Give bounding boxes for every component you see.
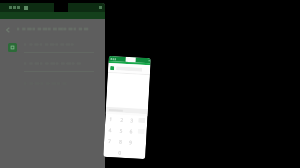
staticText: 4 bbox=[108, 127, 112, 134]
other: Contact bbox=[110, 66, 114, 70]
button[interactable]: 0 bbox=[114, 147, 125, 158]
button[interactable]: Backspace bbox=[138, 118, 145, 123]
staticText: 0 bbox=[118, 150, 122, 157]
button[interactable]: 6 bbox=[125, 126, 136, 137]
staticText: 9 bbox=[129, 139, 132, 146]
staticText: 6 bbox=[129, 128, 133, 135]
staticText: 2 bbox=[120, 117, 123, 124]
staticText: 8 bbox=[119, 139, 122, 146]
button[interactable]: App icon bbox=[8, 43, 17, 52]
button[interactable]: Back bbox=[3, 25, 12, 34]
button[interactable]: 4 bbox=[104, 125, 116, 136]
button[interactable] bbox=[103, 147, 115, 157]
staticText: 1 bbox=[109, 116, 112, 123]
button[interactable]: Back bbox=[0, 3, 105, 168]
button[interactable]: 8 bbox=[115, 136, 125, 148]
button[interactable]: 5 bbox=[115, 125, 126, 137]
staticText: 7 bbox=[108, 138, 111, 145]
button[interactable]: 1 bbox=[105, 114, 117, 125]
button[interactable]: 9 bbox=[125, 137, 135, 148]
button[interactable]: Contact bbox=[110, 66, 148, 72]
staticText: 5 bbox=[119, 128, 123, 135]
button[interactable]: 2 bbox=[116, 114, 127, 126]
button[interactable]: Contact bbox=[103, 56, 151, 159]
button[interactable]: 3 bbox=[126, 115, 137, 126]
button[interactable]: Back bbox=[0, 22, 105, 36]
button[interactable]: 7 bbox=[104, 136, 115, 147]
staticText: 3 bbox=[130, 117, 133, 124]
